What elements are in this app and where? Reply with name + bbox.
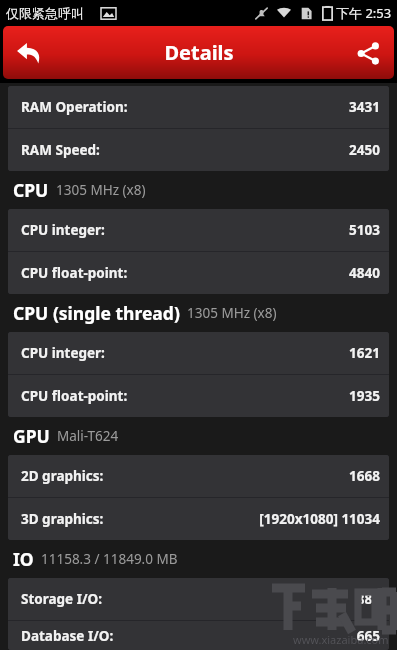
- button[interactable]: 2D graphics:: [8, 455, 389, 497]
- staticText: 1305 MHz (x8): [187, 304, 277, 322]
- staticText: CPU (single thread): [13, 301, 180, 325]
- staticText: 5103: [349, 221, 380, 239]
- staticText: 2450: [349, 141, 380, 159]
- staticText: 11158.3 / 11849.0 MB: [41, 550, 178, 568]
- button[interactable]: RAM Speed:: [8, 129, 389, 171]
- staticText: 3431: [349, 98, 380, 116]
- button[interactable]: 3D graphics:: [8, 498, 389, 540]
- staticText: 仅限紧急呼叫: [6, 5, 84, 21]
- staticText: CPU integer:: [21, 344, 105, 362]
- staticText: Database I/O:: [21, 627, 114, 645]
- button[interactable]: CPU float-point:: [8, 375, 389, 417]
- staticText: 2D graphics:: [21, 467, 104, 485]
- staticText: RAM Speed:: [21, 141, 100, 159]
- staticText: CPU: [13, 178, 49, 202]
- staticText: 1305 MHz (x8): [56, 181, 146, 199]
- staticText: Storage I/O:: [21, 590, 103, 608]
- staticText: 886: [356, 590, 380, 608]
- button[interactable]: CPU float-point:: [8, 252, 389, 294]
- staticText: CPU float-point:: [21, 387, 128, 405]
- staticText: 3D graphics:: [21, 510, 104, 528]
- staticText: 1621: [349, 344, 380, 362]
- staticText: Details: [164, 39, 234, 66]
- button[interactable]: Database I/O:: [8, 621, 389, 650]
- button[interactable]: Share: [342, 27, 394, 79]
- staticText: RAM Operation:: [21, 98, 128, 116]
- staticText: 1668: [349, 467, 380, 485]
- staticText: CPU float-point:: [21, 264, 128, 282]
- button[interactable]: CPU integer:: [8, 209, 389, 251]
- button[interactable]: Storage I/O:: [8, 578, 389, 620]
- button[interactable]: CPU integer:: [8, 332, 389, 374]
- staticText: IO: [13, 547, 34, 571]
- staticText: 665: [356, 627, 380, 645]
- staticText: GPU: [13, 424, 50, 448]
- staticText: 4840: [349, 264, 380, 282]
- staticText: Mali-T624: [57, 427, 119, 445]
- button[interactable]: RAM Operation:: [8, 86, 389, 128]
- staticText: 1935: [349, 387, 380, 405]
- staticText: [1920x1080] 11034: [259, 510, 380, 528]
- staticText: CPU integer:: [21, 221, 105, 239]
- button[interactable]: Back: [3, 27, 55, 79]
- staticText: 下午 2:53: [336, 4, 392, 22]
- staticText: www.xiazaiba.com: [293, 632, 389, 647]
